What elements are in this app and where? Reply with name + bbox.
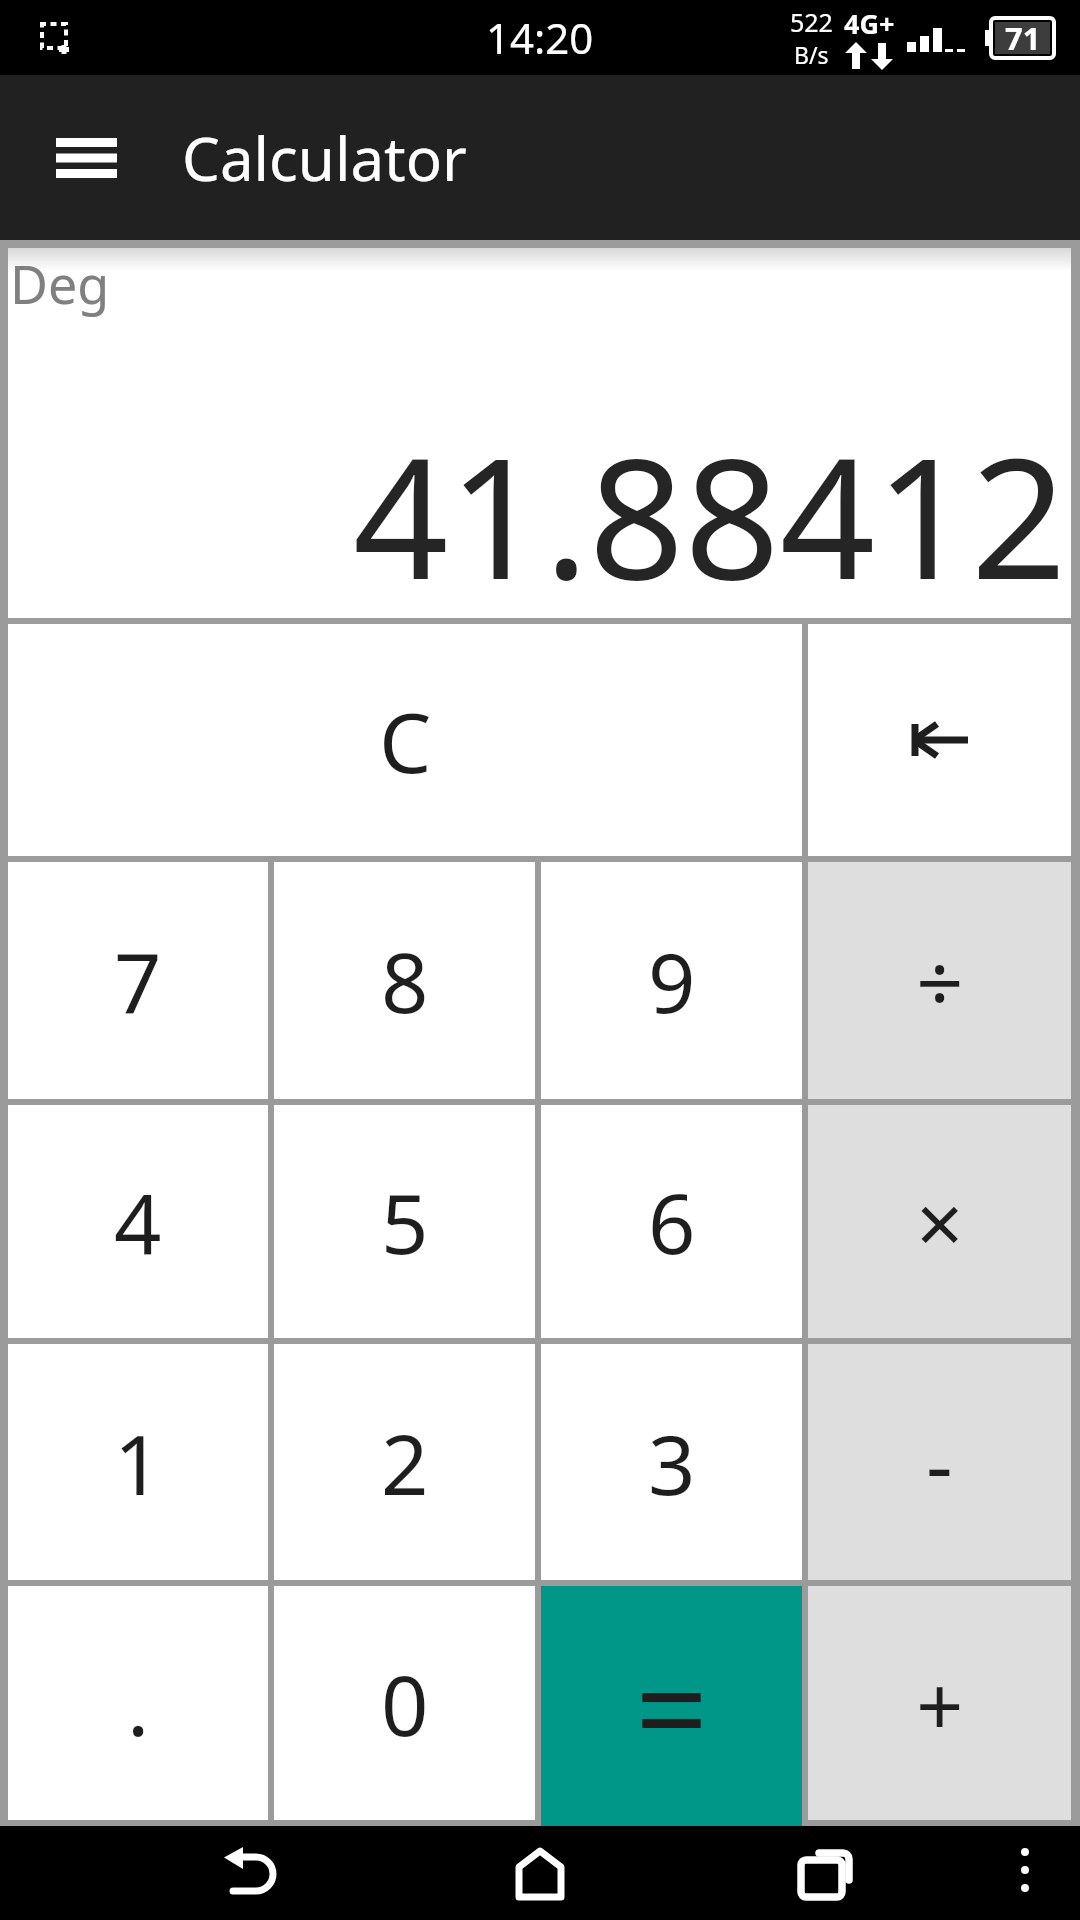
staticText: B/s [794,39,829,70]
button[interactable]: 3 [541,1344,802,1580]
button[interactable]: 6 [541,1105,802,1338]
button[interactable]: ÷ [808,862,1071,1099]
button[interactable] [195,1826,305,1920]
staticText: 522 [790,5,833,39]
button[interactable]: 0 [274,1586,535,1820]
staticText: + [916,1647,964,1760]
staticText: × [916,1165,964,1278]
staticText: C [379,684,432,797]
button[interactable]: 4 [8,1105,268,1338]
staticText: 3 [648,1406,696,1519]
staticText: 6 [648,1165,696,1278]
staticText: 0 [381,1647,429,1760]
staticText: 5 [381,1165,429,1278]
button[interactable]: 5 [274,1105,535,1338]
button[interactable]: 7 [8,862,268,1099]
button[interactable]: × [808,1105,1071,1338]
staticText: 4G+ [844,5,895,42]
staticText: 1 [114,1406,162,1519]
button[interactable] [40,112,132,204]
staticText: 41.88412 [353,400,1067,627]
staticText: 9 [648,924,696,1037]
staticText: Calculator [182,117,467,199]
staticText: 14:20 [486,9,594,66]
button[interactable] [770,1826,880,1920]
staticText: 4 [114,1165,162,1278]
button[interactable] [990,1826,1060,1920]
staticText: ÷ [916,924,964,1037]
button[interactable]: . [8,1586,268,1820]
staticText: 8 [381,924,429,1037]
button[interactable]: 2 [274,1344,535,1580]
button[interactable]: - [808,1344,1071,1580]
button[interactable]: 8 [274,862,535,1099]
staticText: = [635,1619,709,1793]
staticText: 71 [1005,17,1041,59]
button[interactable] [808,624,1071,856]
button[interactable]: 9 [541,862,802,1099]
button[interactable] [485,1826,595,1920]
button[interactable]: + [808,1586,1071,1820]
staticText: Deg [10,248,110,319]
staticText: . [127,1647,150,1760]
button[interactable]: = [541,1586,802,1826]
staticText: 7 [114,924,162,1037]
button[interactable]: 1 [8,1344,268,1580]
button[interactable]: C [8,624,802,856]
staticText: 2 [381,1406,429,1519]
staticText: - [926,1406,953,1519]
